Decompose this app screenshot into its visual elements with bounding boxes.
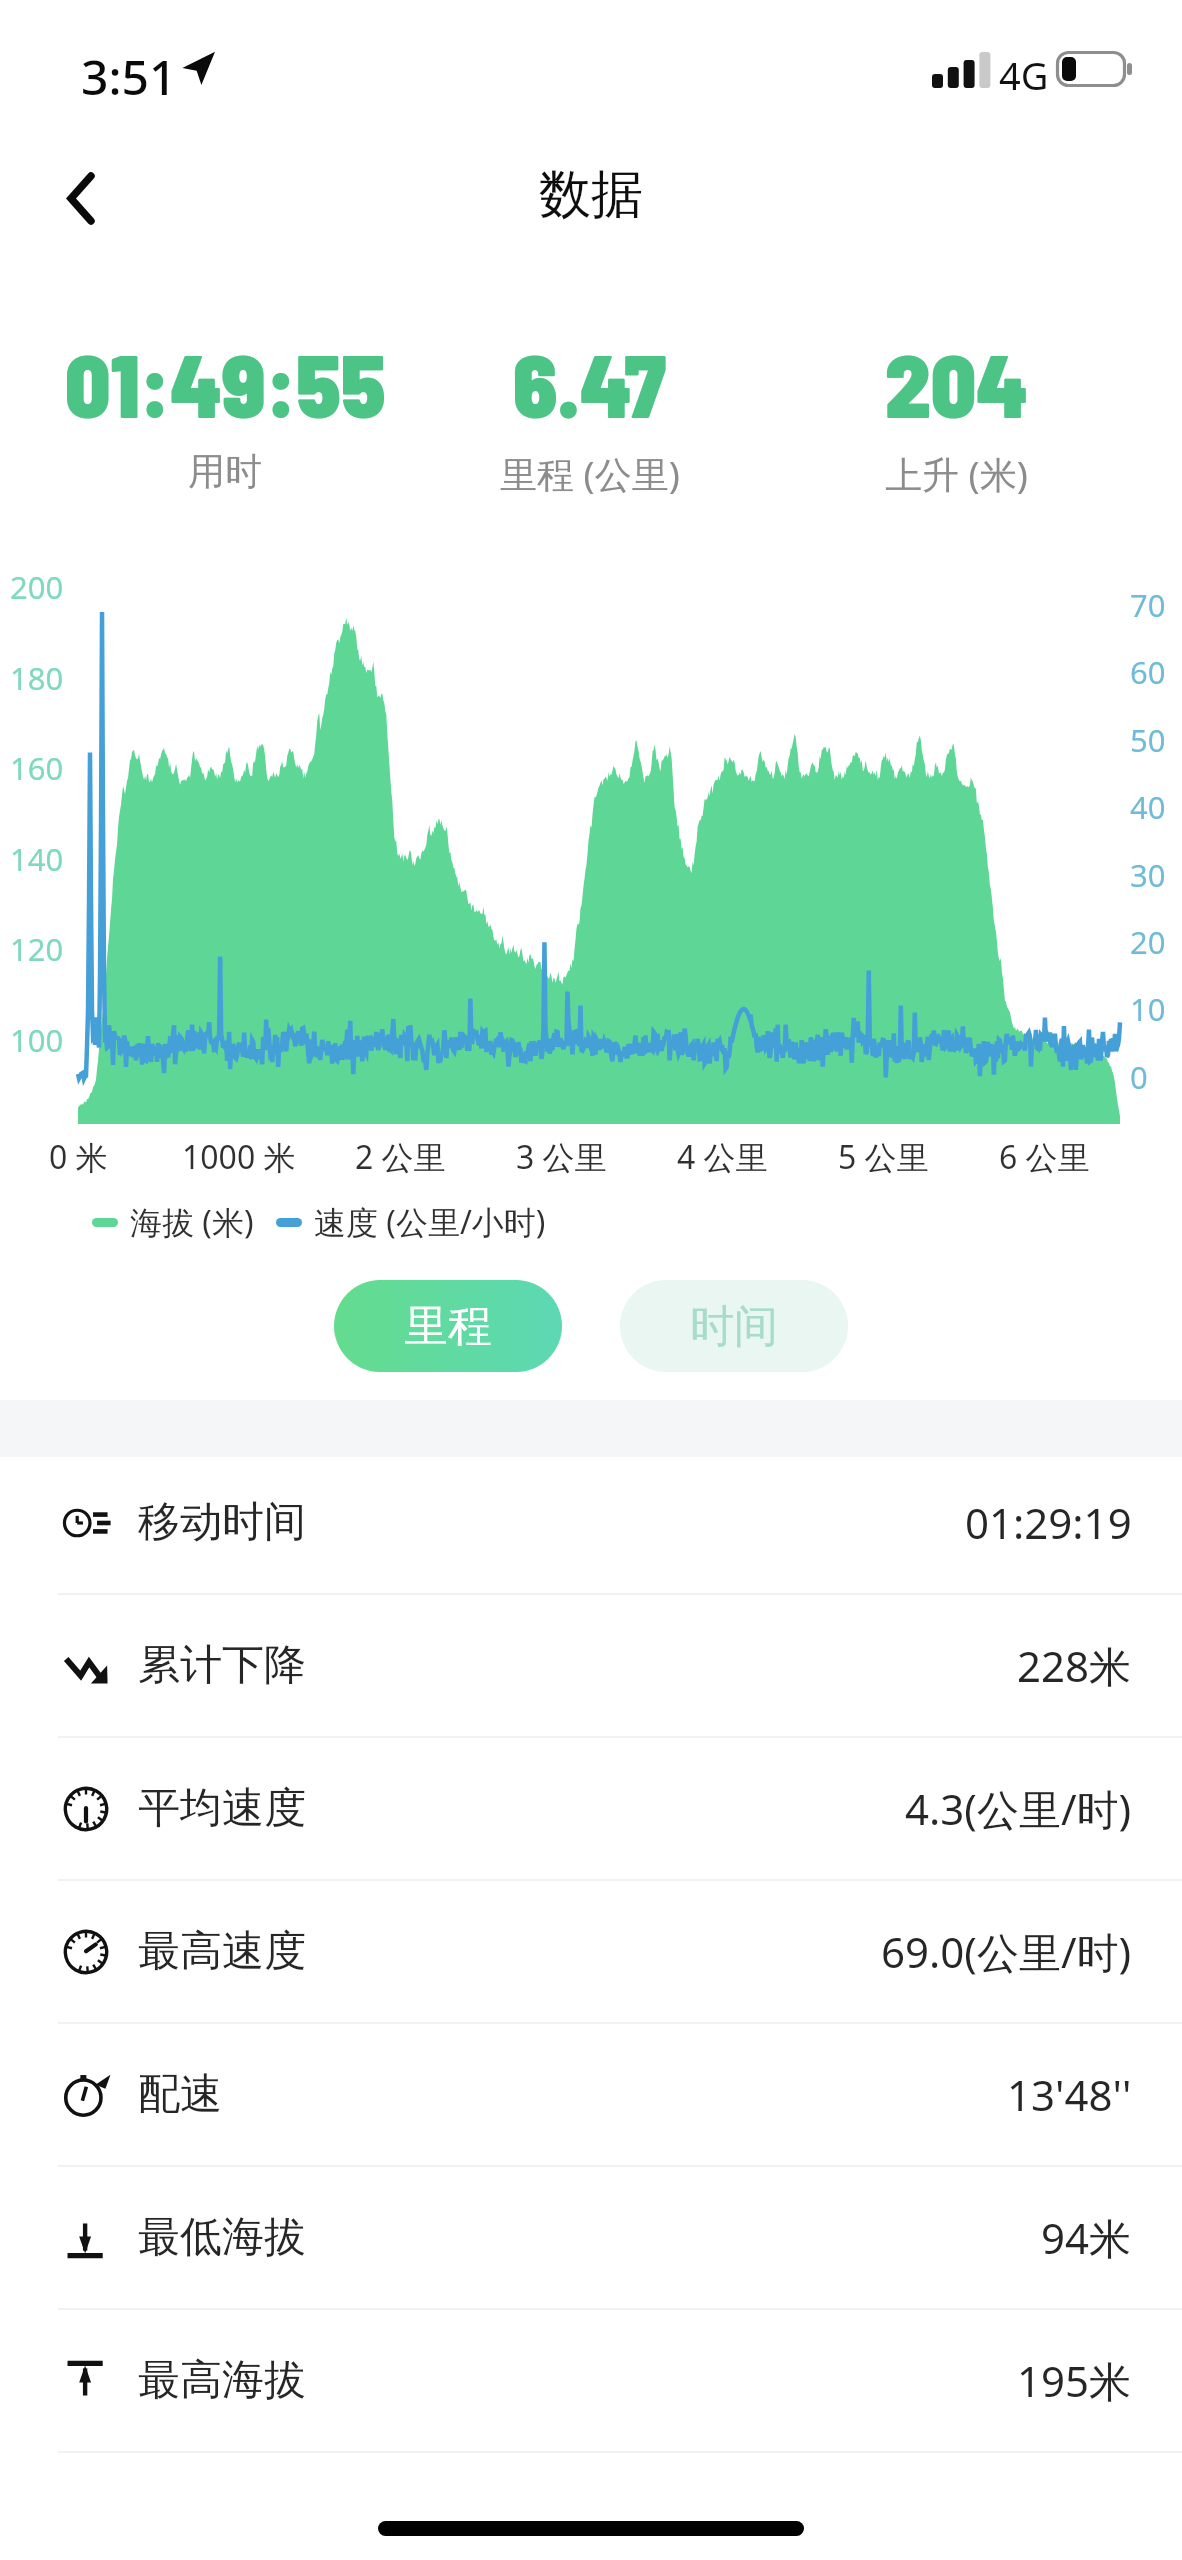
staticText: 3 公里 <box>516 1135 607 1179</box>
button[interactable]: 移动时间 <box>0 1452 1182 1595</box>
staticText: 204 <box>885 330 1028 436</box>
button[interactable]: 累计下降 <box>0 1595 1182 1738</box>
staticText: 5 公里 <box>838 1135 929 1179</box>
staticText: 里程 <box>404 1299 492 1354</box>
staticText: 最低海拔 <box>138 2211 306 2264</box>
staticText: 70 <box>1130 584 1166 626</box>
button[interactable]: 配速 <box>0 2024 1182 2167</box>
staticText: 120 <box>10 928 64 970</box>
staticText: 4G <box>999 49 1049 101</box>
staticText: 10 <box>1130 988 1166 1030</box>
staticText: 01:29:19 <box>965 1494 1132 1551</box>
button[interactable]: 最高海拔 <box>0 2310 1182 2453</box>
staticText: 6 公里 <box>999 1135 1090 1179</box>
staticText: 180 <box>10 657 64 699</box>
staticText: 2 公里 <box>355 1135 446 1179</box>
button[interactable]: 最低海拔 <box>0 2167 1182 2310</box>
staticText: 160 <box>10 747 64 789</box>
staticText: 上升 (米) <box>885 448 1028 499</box>
button[interactable]: 时间 <box>620 1280 848 1372</box>
button[interactable]: 平均速度 <box>0 1738 1182 1881</box>
button[interactable]: 里程 <box>334 1280 562 1372</box>
staticText: 累计下降 <box>138 1639 306 1692</box>
staticText: 4.3(公里/时) <box>905 1780 1132 1837</box>
staticText: 时间 <box>690 1299 778 1354</box>
staticText: 海拔 (米) <box>130 1200 254 1244</box>
staticText: 移动时间 <box>138 1496 306 1549</box>
staticText: 20 <box>1130 921 1166 963</box>
staticText: 配速 <box>138 2068 222 2121</box>
staticText: 4 公里 <box>677 1135 768 1179</box>
staticText: 13'48'' <box>1007 2066 1132 2123</box>
staticText: 30 <box>1130 854 1166 896</box>
staticText: 100 <box>10 1019 64 1061</box>
staticText: 速度 (公里/小时) <box>314 1200 546 1244</box>
staticText: 195米 <box>1017 2352 1132 2409</box>
staticText: 60 <box>1130 651 1166 693</box>
staticText: 数据 <box>539 162 643 228</box>
staticText: 里程 (公里) <box>500 448 680 499</box>
staticText: 40 <box>1130 786 1166 828</box>
staticText: 0 米 <box>49 1135 108 1179</box>
staticText: 50 <box>1130 719 1166 761</box>
staticText: 1000 米 <box>182 1135 296 1179</box>
staticText: 01:49:55 <box>65 330 386 436</box>
staticText: 69.0(公里/时) <box>881 1923 1132 1980</box>
staticText: 6.47 <box>513 330 667 436</box>
staticText: 用时 <box>188 448 262 495</box>
button[interactable]: Back <box>40 145 140 245</box>
staticText: 3:51 <box>81 44 177 109</box>
staticText: 140 <box>10 838 64 880</box>
staticText: 平均速度 <box>138 1782 306 1835</box>
staticText: 0 <box>1130 1056 1148 1098</box>
staticText: 最高海拔 <box>138 2354 306 2407</box>
button[interactable]: 最高速度 <box>0 1881 1182 2024</box>
staticText: 200 <box>10 566 64 608</box>
staticText: 228米 <box>1017 1637 1132 1694</box>
staticText: 94米 <box>1041 2209 1132 2266</box>
staticText: 最高速度 <box>138 1925 306 1978</box>
